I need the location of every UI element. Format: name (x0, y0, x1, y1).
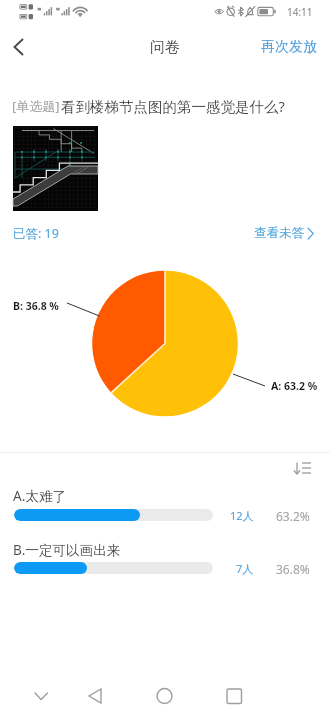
staticText: 7人 (236, 561, 254, 576)
staticText: 问卷 (150, 38, 180, 57)
staticText: [单选题] (12, 97, 60, 115)
staticText: 63.2% (276, 508, 310, 524)
button[interactable]: Home (143, 678, 185, 715)
button[interactable] (0, 486, 330, 526)
button[interactable]: Recent apps (213, 678, 255, 715)
staticText: 14:11 (287, 5, 313, 19)
button[interactable]: 查看未答 (254, 225, 317, 241)
staticText: B: 36.8 % (13, 299, 59, 313)
button[interactable]: Back (74, 678, 116, 715)
button[interactable]: 已答: 19 (13, 225, 59, 242)
staticText: 12人 (230, 508, 254, 523)
staticText: 36.8% (276, 561, 310, 577)
button[interactable]: Hide keyboard (20, 678, 62, 715)
button[interactable]: Back (0, 29, 38, 65)
staticText: 查看未答 (254, 225, 304, 241)
button[interactable]: 再次发放 (248, 30, 330, 64)
staticText: 已答: 19 (13, 225, 59, 242)
staticText: B.一定可以画出来 (13, 540, 121, 559)
button[interactable]: Sort (292, 458, 314, 480)
staticText: 看到楼梯节点图的第一感觉是什么? (61, 96, 285, 116)
staticText: A: 63.2 % (271, 379, 318, 393)
staticText: 再次发放 (261, 38, 317, 56)
staticText: A.太难了 (13, 486, 67, 505)
button[interactable] (0, 540, 330, 580)
